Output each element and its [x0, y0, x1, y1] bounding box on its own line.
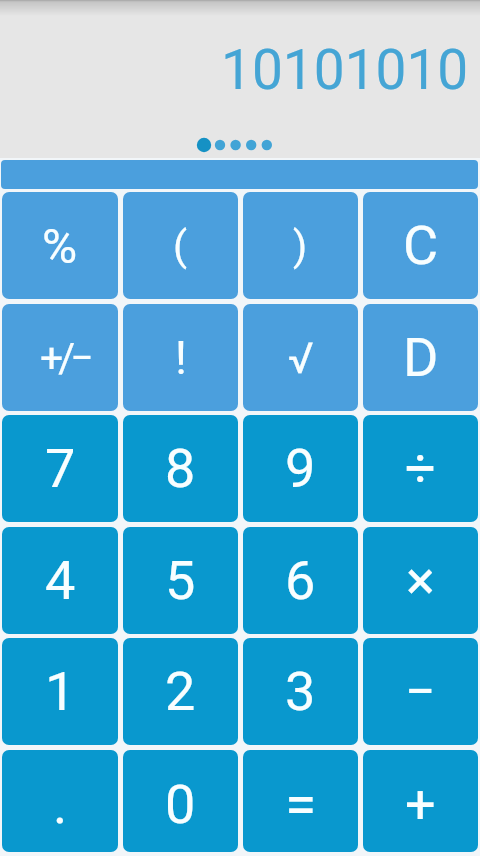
button[interactable]: %: [2, 192, 118, 299]
staticText: +/−: [40, 334, 89, 382]
button[interactable]: 2: [123, 638, 238, 745]
staticText: 1: [45, 660, 76, 723]
staticText: .: [53, 773, 68, 836]
staticText: C: [403, 214, 439, 277]
button[interactable]: 4: [2, 527, 118, 634]
button[interactable]: 7: [2, 415, 118, 522]
staticText: ): [293, 222, 308, 270]
staticText: 7: [45, 437, 76, 500]
staticText: +: [405, 773, 436, 836]
staticText: 5: [165, 549, 196, 612]
button[interactable]: =: [243, 750, 358, 852]
button[interactable]: +/−: [2, 304, 118, 411]
button[interactable]: −: [363, 638, 478, 745]
staticText: 6: [285, 549, 316, 612]
button[interactable]: D: [363, 304, 478, 411]
button[interactable]: 1: [2, 638, 118, 745]
button[interactable]: (: [123, 192, 238, 299]
button[interactable]: C: [363, 192, 478, 299]
button[interactable]: .: [2, 750, 118, 852]
button[interactable]: √: [243, 304, 358, 411]
staticText: −: [405, 660, 436, 723]
staticText: 9: [285, 437, 316, 500]
button[interactable]: 0: [123, 750, 238, 852]
staticText: 10101010: [221, 38, 469, 102]
button[interactable]: +: [363, 750, 478, 852]
button[interactable]: ÷: [363, 415, 478, 522]
staticText: !: [175, 331, 187, 385]
staticText: 3: [285, 660, 316, 723]
button[interactable]: !: [123, 304, 238, 411]
staticText: 0: [165, 773, 196, 836]
button[interactable]: ×: [363, 527, 478, 634]
button[interactable]: 3: [243, 638, 358, 745]
staticText: 8: [165, 437, 196, 500]
button[interactable]: 6: [243, 527, 358, 634]
button[interactable]: ): [243, 192, 358, 299]
staticText: ×: [406, 549, 435, 612]
staticText: (: [173, 222, 188, 270]
button[interactable]: 8: [123, 415, 238, 522]
staticText: 2: [165, 660, 196, 723]
button[interactable]: 5: [123, 527, 238, 634]
button[interactable]: 9: [243, 415, 358, 522]
staticText: D: [403, 326, 439, 389]
staticText: 4: [45, 549, 76, 612]
staticText: %: [42, 218, 78, 274]
staticText: √: [288, 333, 314, 383]
staticText: =: [285, 771, 317, 838]
staticText: ÷: [405, 437, 436, 500]
